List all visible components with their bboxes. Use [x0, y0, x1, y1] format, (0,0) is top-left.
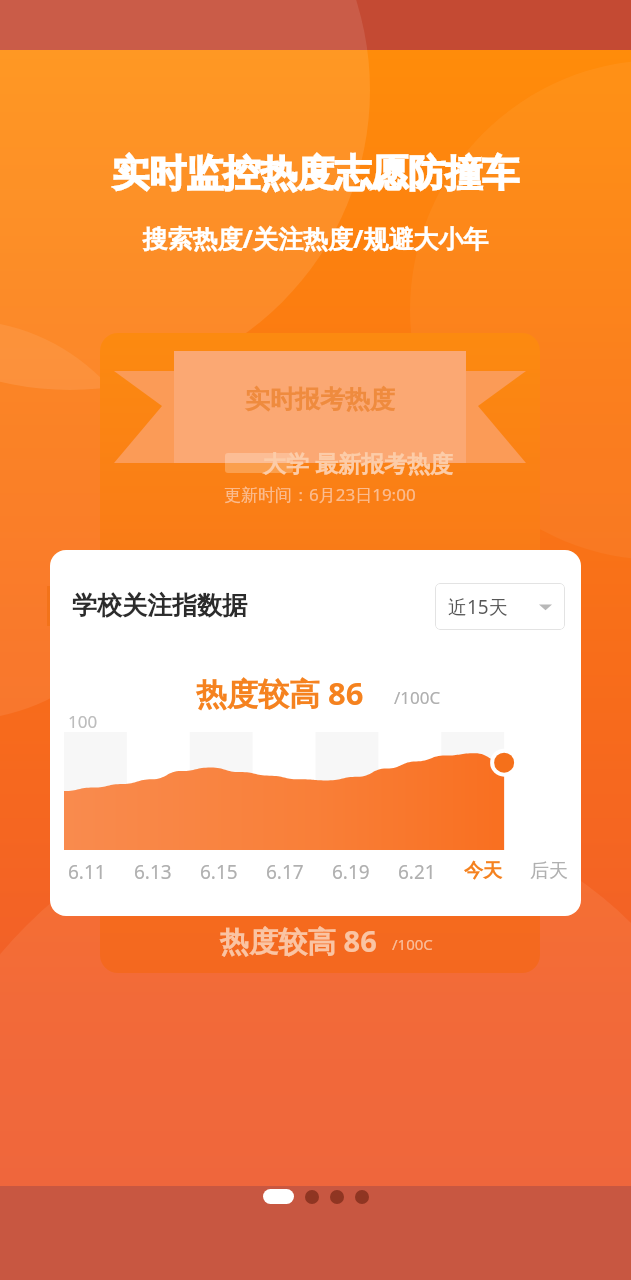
staticText: 搜索热度/关注热度/规避大小年 [0, 221, 631, 255]
staticText: 实时报考热度 [245, 384, 395, 415]
staticText: 近15天 [448, 594, 508, 620]
staticText: 6.19 [332, 859, 370, 885]
staticText: /100C [392, 934, 433, 954]
staticText: 6.15 [200, 859, 238, 885]
staticText: 热度较高 86 [196, 672, 364, 714]
staticText: 6.17 [266, 859, 304, 885]
staticText: 100 [68, 710, 98, 733]
button[interactable]: Page 2 [305, 1190, 319, 1204]
button[interactable]: 近15天 [435, 583, 565, 630]
staticText: 实时监控热度志愿防撞车 [0, 150, 631, 197]
staticText: 6.21 [398, 859, 436, 885]
button[interactable]: Page 1 [263, 1189, 294, 1204]
staticText: 6.13 [134, 859, 172, 885]
staticText: 更新时间：6月23日19:00 [224, 483, 416, 506]
staticText: 热度较高 86 [220, 921, 377, 961]
staticText: /100C [394, 686, 441, 709]
button[interactable]: Page 4 [355, 1190, 369, 1204]
button[interactable]: Page 3 [330, 1190, 344, 1204]
staticText: 学校关注指数据 [72, 590, 247, 621]
staticText: 大学 最新报考热度 [263, 447, 453, 478]
staticText: 后天 [530, 859, 568, 883]
staticText: 6.11 [68, 859, 106, 885]
staticText: 今天 [464, 859, 502, 883]
